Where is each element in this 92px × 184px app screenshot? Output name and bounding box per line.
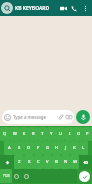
button[interactable]: Backspace [79,155,92,169]
button[interactable]: P [83,127,92,141]
staticText: N [64,159,68,165]
staticText: S [18,145,21,151]
staticText: T [41,131,44,137]
button[interactable]: K [70,141,79,155]
staticText: F [37,145,40,151]
staticText: H [55,145,59,151]
button[interactable]: Video call [58,0,69,16]
staticText: G [46,145,50,151]
button[interactable]: W [10,127,20,141]
staticText: W [13,131,17,137]
button[interactable]: A [4,141,14,155]
button[interactable]: Type a message [2,110,74,124]
staticText: Q [3,131,7,137]
staticText: O [77,131,81,137]
button[interactable]: J [61,141,70,155]
button[interactable]: KB KEYBOARD [15,0,58,16]
staticText: M [73,159,77,165]
staticText: I [69,131,71,137]
button[interactable]: S [14,141,24,155]
staticText: K [73,145,76,151]
button[interactable]: L [79,141,88,155]
staticText: X [28,159,31,165]
button[interactable]: F [34,141,43,155]
staticText: R [32,131,35,137]
button[interactable]: X [24,155,34,169]
staticText: V [46,159,49,165]
button[interactable]: T [38,127,47,141]
button[interactable]: R [29,127,38,141]
staticText: U [59,131,63,137]
staticText: D [27,145,31,151]
staticText: J [65,145,67,151]
button[interactable]: Shift [0,155,14,169]
staticText: B [55,159,58,165]
staticText: E [23,131,26,137]
button[interactable]: B [52,155,61,169]
button[interactable]: O [74,127,83,141]
staticText: Type a message [13,114,46,120]
button[interactable]: I [65,127,74,141]
button[interactable]: C [34,155,43,169]
button[interactable]: Q [0,127,10,141]
button[interactable]: Z [14,155,24,169]
button[interactable]: Emoji [12,169,21,183]
button[interactable]: G [43,141,52,155]
staticText: KB KEYBOARD [15,5,50,12]
button[interactable]: ?123 [0,169,12,183]
staticText: Z [18,159,21,165]
button[interactable]: E [20,127,29,141]
staticText: ?123 [3,174,10,178]
button[interactable]: N [61,155,70,169]
button[interactable]: H [52,141,61,155]
button[interactable]: V [43,155,52,169]
staticText: L [82,145,85,151]
staticText: A [8,145,11,151]
button[interactable]: Send [79,171,90,182]
button[interactable]: Voice call [69,0,80,16]
button[interactable]: Settings [21,169,31,183]
staticText: P [86,131,89,137]
button[interactable]: More options [80,0,91,16]
button[interactable]: U [56,127,65,141]
button[interactable]: Record voice message [76,110,90,124]
button[interactable]: D [24,141,34,155]
staticText: Y [50,131,53,137]
button[interactable]: M [70,155,79,169]
staticText: C [37,159,40,165]
button[interactable]: Contact photo [1,2,13,14]
button[interactable]: Y [47,127,56,141]
